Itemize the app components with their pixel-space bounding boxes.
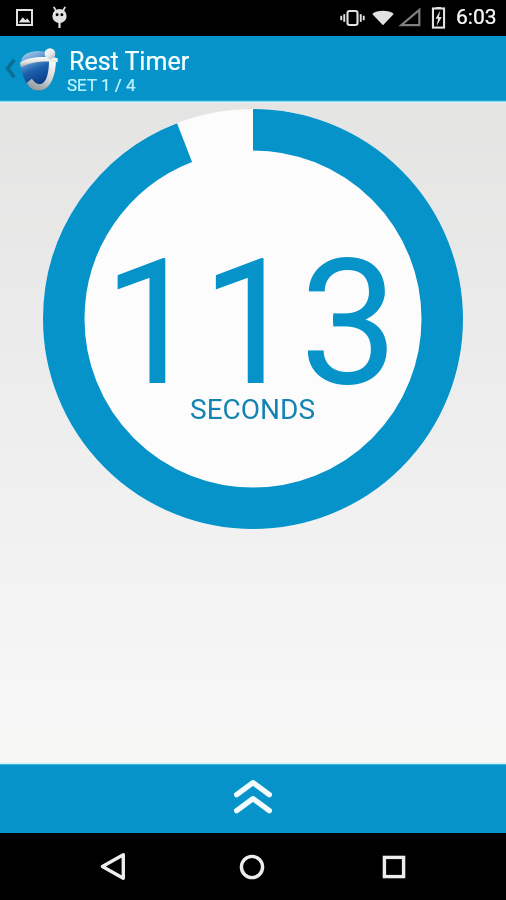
button[interactable]: Skip rest: [0, 762, 506, 833]
button[interactable]: Recents: [352, 833, 436, 900]
staticText: 6:03: [456, 5, 497, 30]
staticText: SECONDS: [190, 393, 316, 426]
button[interactable]: Back: [70, 833, 154, 900]
button[interactable]: Home: [210, 833, 294, 900]
button[interactable]: Back: [0, 36, 506, 103]
staticText: SET 1 / 4: [67, 75, 136, 95]
staticText: 113: [103, 221, 399, 426]
staticText: Rest Timer: [69, 47, 190, 76]
